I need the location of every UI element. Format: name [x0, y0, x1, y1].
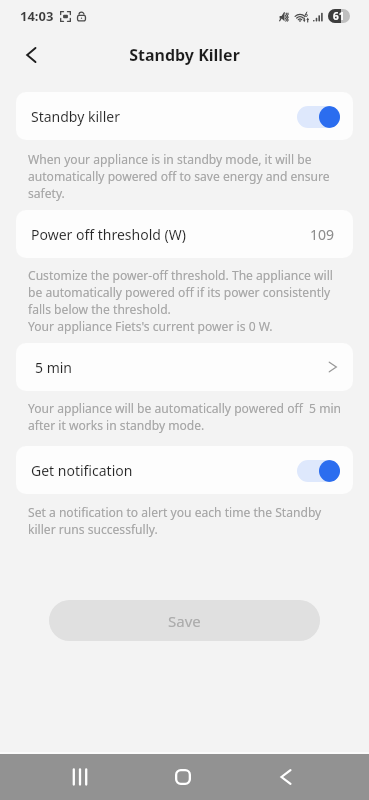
button[interactable]: Home: [158, 754, 207, 800]
button[interactable]: Toggle: [297, 460, 340, 482]
staticText: 109: [310, 225, 335, 244]
staticText: 61: [333, 9, 345, 23]
staticText: Get notification: [31, 461, 133, 480]
staticText: Save: [168, 611, 201, 631]
staticText: Standby Killer: [129, 44, 240, 66]
button[interactable]: Back: [261, 754, 310, 800]
staticText: 14:03: [20, 7, 54, 25]
button[interactable]: Toggle: [297, 106, 340, 128]
staticText: Power off threshold (W): [31, 225, 186, 244]
staticText: Customize the power-off threshold. The a…: [28, 267, 333, 335]
button[interactable]: Recent apps: [55, 754, 104, 800]
staticText: 5 min: [35, 358, 73, 377]
staticText: Set a notification to alert you each tim…: [28, 504, 322, 538]
staticText: Your appliance will be automatically pow…: [28, 400, 342, 434]
staticText: When your appliance is in standby mode, …: [28, 151, 330, 202]
staticText: Standby killer: [31, 107, 120, 126]
button[interactable]: Save: [49, 600, 320, 641]
button[interactable]: Back: [10, 34, 51, 75]
